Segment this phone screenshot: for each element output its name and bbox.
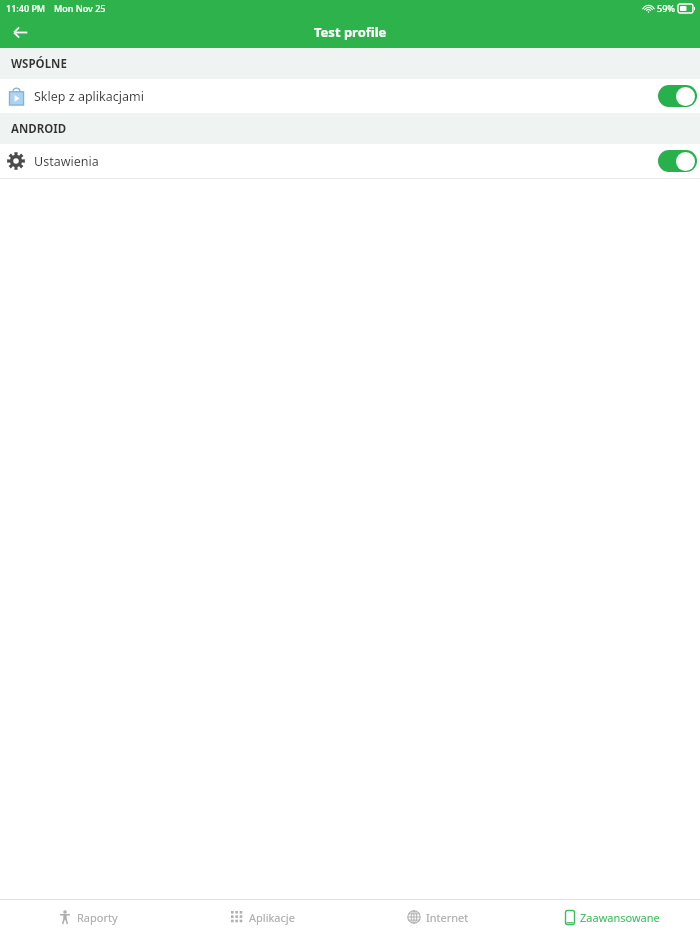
- staticText: Zaawansowane: [580, 910, 660, 925]
- button[interactable]: Toggle: [658, 150, 697, 172]
- staticText: Internet: [426, 910, 469, 925]
- button[interactable]: Aplikacje: [175, 900, 350, 934]
- staticText: Aplikacje: [249, 910, 295, 925]
- staticText: 59%: [657, 2, 675, 14]
- staticText: Mon Nov 25: [54, 2, 106, 14]
- staticText: Raporty: [77, 910, 118, 925]
- button[interactable]: Toggle: [658, 85, 697, 107]
- staticText: ANDROID: [11, 121, 67, 137]
- button[interactable]: Raporty: [0, 900, 175, 934]
- staticText: 11:40 PM: [6, 2, 46, 14]
- staticText: Sklep z aplikacjami: [34, 88, 144, 105]
- button[interactable]: Ustawienia: [0, 144, 700, 178]
- staticText: Ustawienia: [34, 153, 99, 170]
- button[interactable]: Zaawansowane: [525, 900, 700, 934]
- button[interactable]: Back: [0, 16, 40, 48]
- staticText: Test profile: [314, 23, 387, 41]
- button[interactable]: Sklep z aplikacjami: [0, 79, 700, 113]
- staticText: WSPÓLNE: [11, 56, 67, 72]
- button[interactable]: Internet: [350, 900, 525, 934]
